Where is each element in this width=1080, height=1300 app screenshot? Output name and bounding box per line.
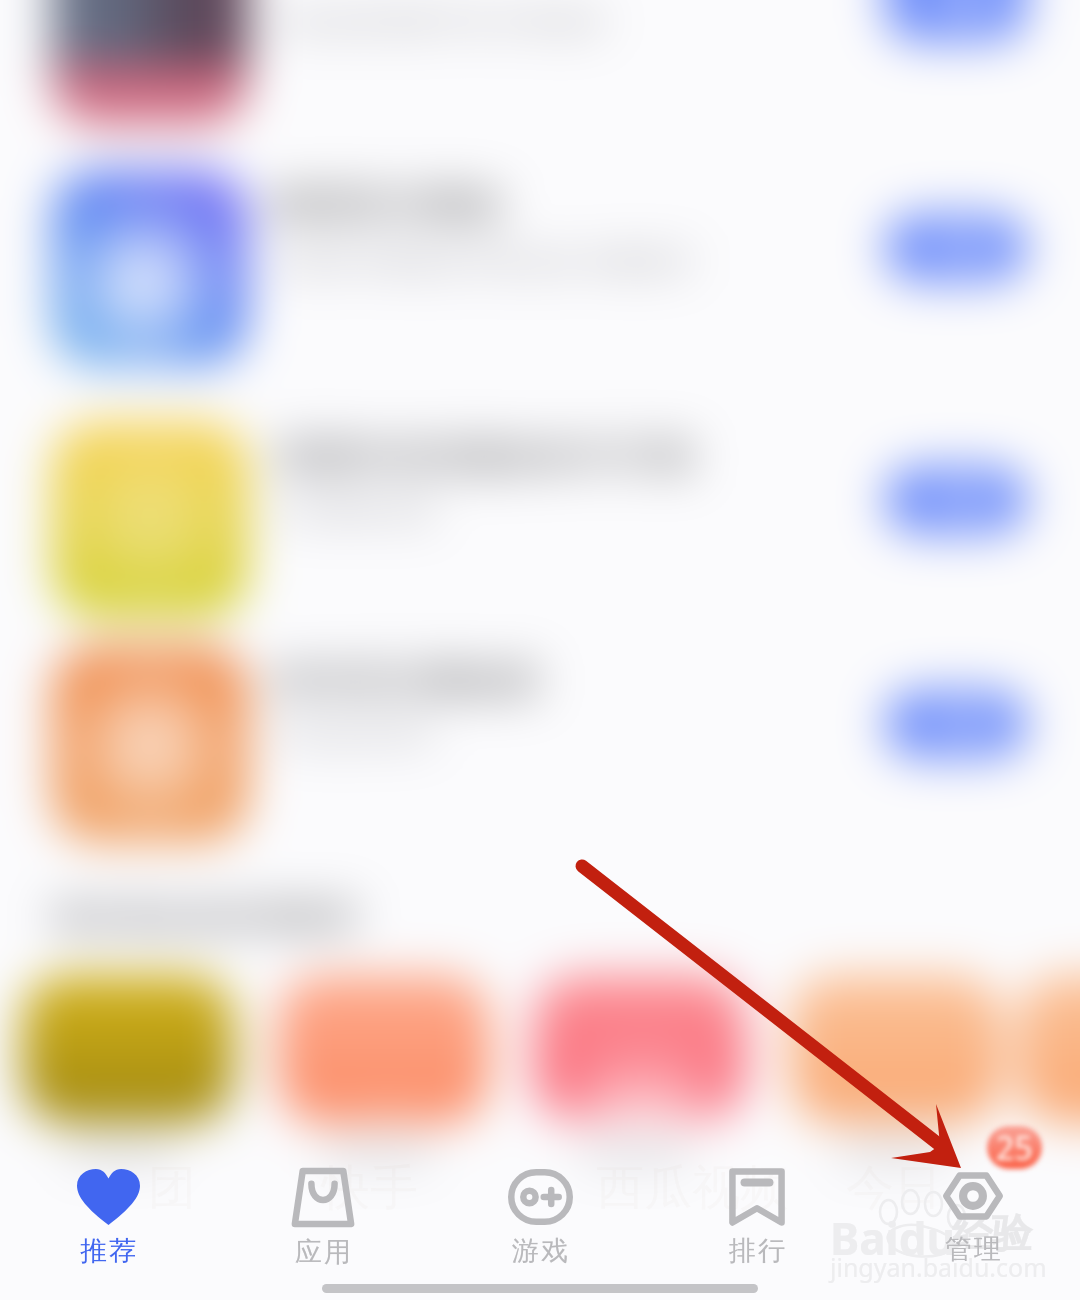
staticText: 推荐 (79, 1234, 137, 1268)
staticText: 生活服务必备 (275, 494, 437, 528)
staticText: 西瓜视频 (596, 1158, 788, 1218)
staticText: 应用 (294, 1235, 352, 1269)
staticText: 经验 (952, 1208, 1032, 1258)
staticText: 猜你喜欢的应用推荐 (52, 896, 358, 939)
staticText: 酷我音乐播放 (275, 180, 503, 228)
staticText: 应用名称 (326, 1136, 430, 1169)
staticText: 管理 (944, 1232, 1002, 1266)
button[interactable]: Manage (873, 1160, 1073, 1278)
staticText: 应用名称 (584, 1136, 688, 1169)
staticText: 应用名称 (842, 1136, 946, 1169)
staticText: 快手 (322, 1158, 418, 1218)
staticText: 虾米音乐播放器 (275, 656, 541, 704)
button[interactable]: Games (440, 1160, 640, 1278)
staticText: 今日 (846, 1158, 942, 1218)
staticText: 音乐娱乐软件 (275, 718, 437, 752)
staticText: 25 (996, 1126, 1033, 1169)
staticText: Baidu (830, 1208, 956, 1268)
staticText: 游戏 (511, 1234, 569, 1268)
staticText: 下载 (926, 0, 986, 27)
staticText: 下载 (926, 229, 986, 267)
staticText: 下载 (926, 481, 986, 519)
staticText: jingyan.baidu.com (830, 1250, 1047, 1284)
staticText: 团 (148, 1158, 196, 1218)
staticText: 应用名称 (68, 1136, 172, 1169)
staticText: 下载 (926, 705, 986, 743)
staticText: 美团外卖优惠多多天天领 (275, 432, 693, 480)
button[interactable]: Ranking (657, 1160, 857, 1278)
staticText: 排行 (728, 1234, 786, 1268)
button[interactable]: Apps (223, 1160, 423, 1278)
button[interactable]: Recommend (8, 1160, 208, 1278)
staticText: 在线音乐播放器 听歌必备 海量曲库 (275, 242, 695, 279)
